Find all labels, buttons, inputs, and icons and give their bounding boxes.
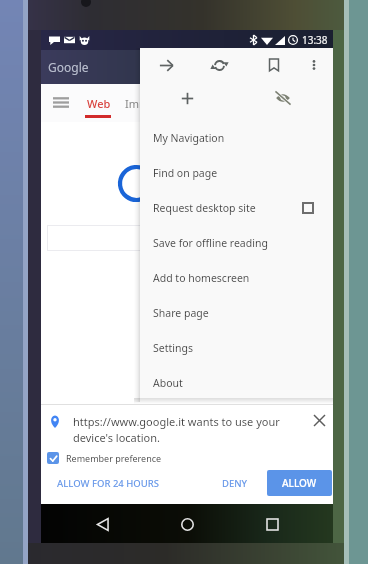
staticText: Share page <box>153 306 209 320</box>
button[interactable]: Forward <box>153 52 180 79</box>
button[interactable]: My Navigation <box>140 120 333 155</box>
button[interactable]: Home <box>170 507 204 541</box>
staticText: Google <box>48 59 89 75</box>
button[interactable]: Back <box>86 507 120 541</box>
button[interactable]: Add to homescreen <box>140 260 333 295</box>
staticText: About <box>153 376 183 390</box>
staticText: Request desktop site <box>153 201 256 215</box>
button[interactable]: Request desktop site <box>140 190 333 225</box>
staticText: ALLOW FOR 24 HOURS <box>57 477 160 490</box>
staticText: Find on page <box>153 166 218 180</box>
button[interactable]: Remember preference <box>47 448 333 468</box>
staticText: https://www.google.it wants to use your <box>73 414 280 429</box>
staticText: Save for offline reading <box>153 236 268 250</box>
staticText: My Navigation <box>153 131 225 145</box>
button[interactable]: Save for offline reading <box>140 225 333 260</box>
button[interactable]: Bookmark <box>260 51 288 79</box>
staticText: Web <box>87 96 111 111</box>
button[interactable]: Refresh <box>206 52 233 79</box>
staticText: 13:38 <box>302 33 328 47</box>
staticText: Imm <box>125 96 150 111</box>
button[interactable]: ALLOW FOR 24 HOURS <box>57 477 160 490</box>
staticText: Add to homescreen <box>153 271 250 285</box>
button[interactable]: Close <box>309 410 329 430</box>
staticText: Remember preference <box>66 452 162 464</box>
button[interactable]: Incognito <box>269 84 297 112</box>
button[interactable]: DENY <box>222 477 248 490</box>
button[interactable]: Recents <box>255 507 289 541</box>
staticText: Settings <box>153 341 193 355</box>
button[interactable]: About <box>140 365 333 400</box>
button[interactable]: ALLOW <box>267 470 332 496</box>
button[interactable]: More options <box>300 51 328 79</box>
staticText: DENY <box>222 477 248 490</box>
button[interactable]: Find on page <box>140 155 333 190</box>
staticText: ALLOW <box>282 476 317 490</box>
button[interactable]: Share page <box>140 295 333 330</box>
button[interactable]: Settings <box>140 330 333 365</box>
button[interactable]: New tab <box>174 85 201 112</box>
staticText: device's location. <box>73 430 160 445</box>
